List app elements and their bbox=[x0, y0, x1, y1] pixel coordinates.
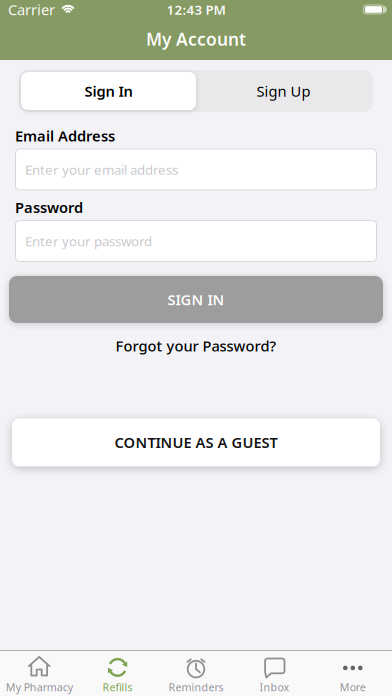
staticText: CONTINUE AS A GUEST bbox=[114, 433, 277, 452]
button[interactable]: Refills bbox=[78, 651, 157, 696]
button[interactable]: Reminders bbox=[157, 651, 235, 696]
button[interactable]: CONTINUE AS A GUEST bbox=[0, 418, 392, 466]
staticText: My Pharmacy bbox=[6, 680, 73, 694]
button[interactable]: Forgot your Password? bbox=[115, 336, 276, 355]
staticText: More bbox=[340, 680, 366, 694]
button[interactable]: SIGN IN bbox=[0, 276, 392, 323]
staticText: Forgot your Password? bbox=[115, 336, 276, 355]
staticText: Email Address bbox=[15, 126, 115, 145]
staticText: Carrier bbox=[8, 0, 55, 19]
button[interactable]: Sign Up bbox=[196, 72, 371, 110]
staticText: 12:43 PM bbox=[166, 1, 225, 18]
staticText: SIGN IN bbox=[167, 290, 224, 309]
staticText: Refills bbox=[103, 680, 133, 694]
staticText: Inbox bbox=[259, 680, 289, 694]
staticText: Enter your password bbox=[25, 232, 152, 250]
button[interactable]: Inbox bbox=[235, 651, 314, 696]
button[interactable]: My Pharmacy bbox=[0, 651, 78, 696]
staticText: Sign Up bbox=[256, 81, 310, 101]
button[interactable]: More bbox=[314, 651, 392, 696]
staticText: Password bbox=[15, 197, 83, 217]
staticText: My Account bbox=[146, 27, 246, 50]
staticText: Enter your email address bbox=[25, 161, 178, 178]
button[interactable]: Sign In bbox=[21, 72, 196, 110]
staticText: Sign In bbox=[84, 81, 132, 101]
staticText: Reminders bbox=[168, 680, 223, 694]
